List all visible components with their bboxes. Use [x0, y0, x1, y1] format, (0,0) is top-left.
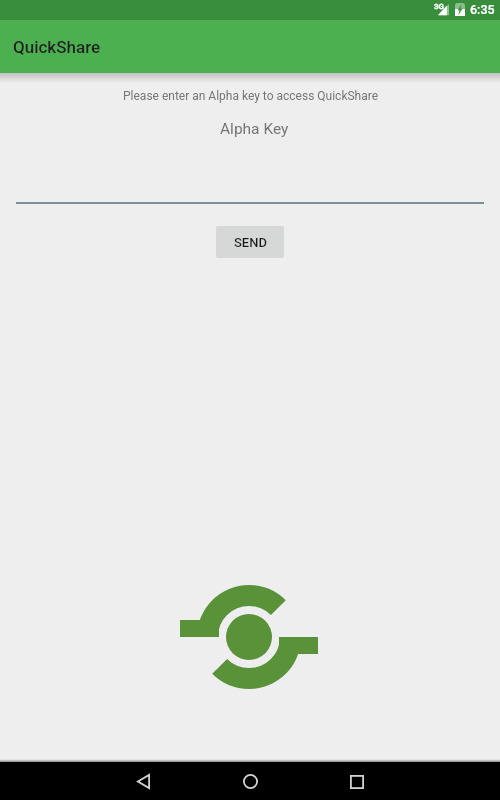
button[interactable]: Back	[119, 761, 167, 800]
staticText: Alpha Key	[220, 120, 289, 138]
staticText: 3G	[434, 2, 444, 11]
staticText: Please enter an Alpha key to access Quic…	[123, 89, 379, 103]
button[interactable]: Home	[226, 761, 274, 800]
staticText: SEND	[234, 235, 267, 250]
button[interactable]: Recent apps	[333, 761, 381, 800]
button[interactable]: SEND	[216, 226, 284, 258]
staticText: QuickShare	[13, 37, 101, 57]
staticText: 6:35	[470, 2, 495, 17]
